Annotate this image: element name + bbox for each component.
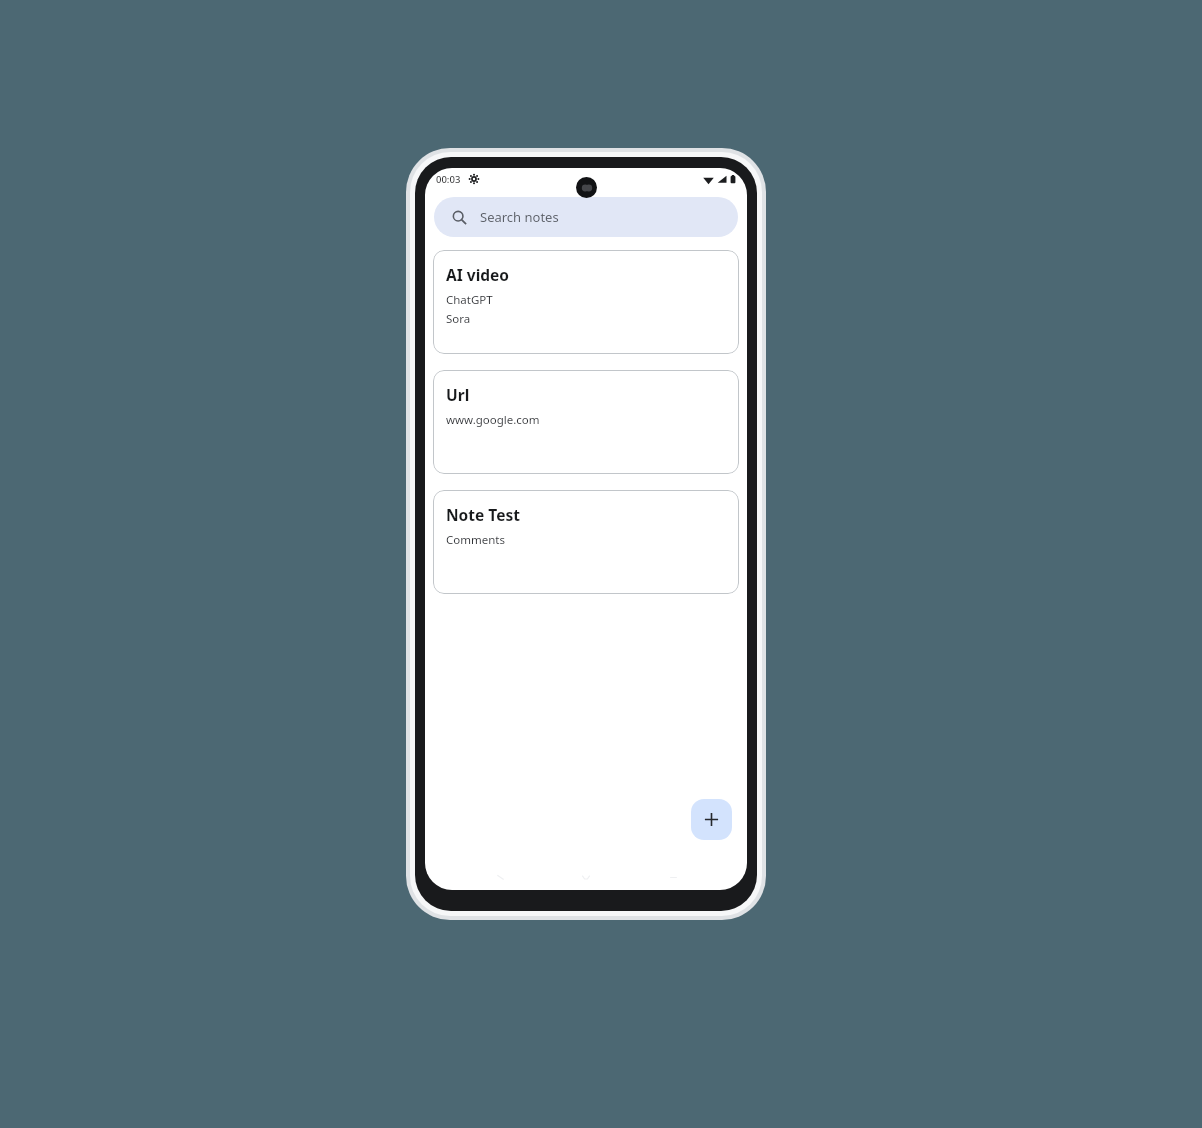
- button[interactable]: Url: [433, 370, 739, 474]
- button[interactable]: Add note: [691, 799, 732, 840]
- button[interactable]: Search notes: [434, 197, 738, 237]
- staticText: ChatGPT: [446, 292, 493, 308]
- staticText: Note Test: [446, 504, 520, 525]
- staticText: Url: [446, 384, 470, 405]
- staticText: 00:03: [436, 173, 461, 186]
- staticText: Comments: [446, 532, 505, 548]
- staticText: Sora: [446, 311, 471, 327]
- button[interactable]: AI video: [433, 250, 739, 354]
- staticText: Search notes: [480, 208, 559, 226]
- button[interactable]: Note Test: [433, 490, 739, 594]
- staticText: AI video: [446, 264, 510, 285]
- staticText: www.google.com: [446, 412, 540, 428]
